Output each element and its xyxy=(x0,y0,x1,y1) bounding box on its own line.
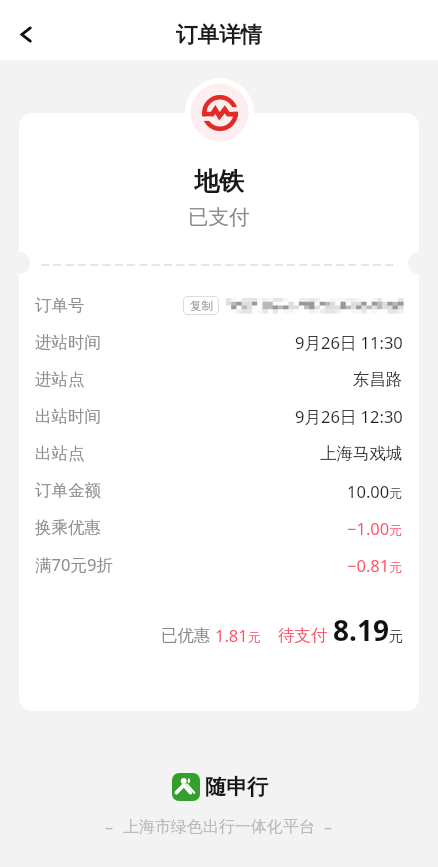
staticText: 订单详情 xyxy=(176,21,262,48)
staticText: – xyxy=(324,816,333,838)
staticText: 待支付 xyxy=(278,625,328,646)
staticText: 上海马戏城 xyxy=(320,443,403,464)
staticText: 换乘优惠 xyxy=(35,517,101,538)
button[interactable]: Back xyxy=(3,12,48,57)
staticText: 9月26日 12:30 xyxy=(295,405,403,428)
staticText: 东昌路 xyxy=(353,369,403,390)
staticText: 进站点 xyxy=(35,369,85,390)
staticText: 复制 xyxy=(190,299,213,313)
button[interactable]: 复制 xyxy=(183,296,219,315)
staticText: – xyxy=(105,816,114,838)
staticText: 出站点 xyxy=(35,443,85,464)
staticText: 订单金额 xyxy=(35,480,101,501)
staticText: −1.00元 xyxy=(347,517,403,539)
staticText: 满70元9折 xyxy=(35,553,113,576)
staticText: 地铁 xyxy=(194,166,244,197)
staticText: 9月26日 11:30 xyxy=(295,331,403,354)
staticText: −0.81元 xyxy=(347,554,403,576)
staticText: 已优惠 xyxy=(161,625,211,646)
staticText: 1.81元 xyxy=(215,624,261,646)
staticText: 10.00元 xyxy=(347,480,403,502)
staticText: 8.19元 xyxy=(333,611,403,649)
staticText: 已支付 xyxy=(188,204,250,230)
staticText: 上海市绿色出行一体化平台 xyxy=(123,817,315,837)
staticText: 出站时间 xyxy=(35,406,101,427)
staticText: 进站时间 xyxy=(35,332,101,353)
staticText: 随申行 xyxy=(205,774,268,800)
staticText: 订单号 xyxy=(35,295,85,316)
